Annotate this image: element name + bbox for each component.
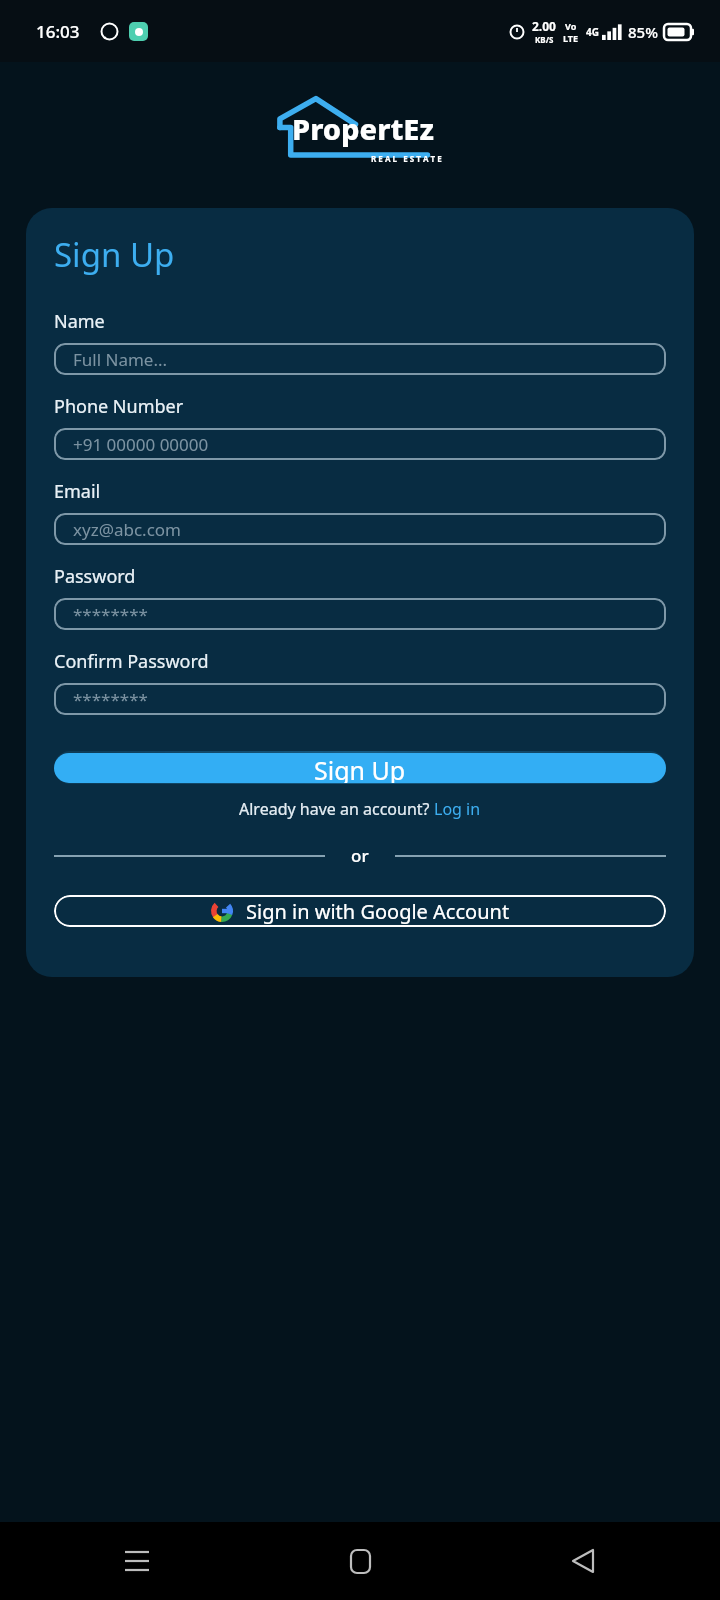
button[interactable]: Log in <box>434 798 481 820</box>
staticText: 16:03 <box>36 20 80 43</box>
staticText: Email <box>54 479 101 504</box>
staticText: Vo <box>565 20 577 32</box>
staticText: Phone Number <box>54 394 184 419</box>
staticText: Full Name... <box>73 348 168 371</box>
button[interactable]: Recent apps <box>110 1534 164 1588</box>
staticText: Sign Up <box>54 232 175 277</box>
staticText: Already have an account? <box>239 798 434 820</box>
staticText: Sign Up <box>314 753 406 783</box>
button[interactable]: Back <box>556 1534 610 1588</box>
staticText: Log in <box>434 798 481 820</box>
staticText: ******** <box>73 603 148 626</box>
staticText: ******** <box>73 688 148 711</box>
button[interactable]: +91 00000 00000 <box>54 428 666 460</box>
staticText: PropertEz <box>292 109 434 148</box>
button[interactable]: Sign Up <box>54 753 666 783</box>
staticText: KB/S <box>535 34 554 45</box>
staticText: 85% <box>628 22 658 42</box>
staticText: R E A L E S T A T E <box>371 153 442 164</box>
button[interactable]: xyz@abc.com <box>54 513 666 545</box>
staticText: LTE <box>563 32 579 44</box>
staticText: 2.00 <box>532 18 556 34</box>
button[interactable]: ******** <box>54 683 666 715</box>
staticText: Name <box>54 309 105 334</box>
staticText: Sign in with Google Account <box>246 898 510 925</box>
staticText: or <box>351 844 369 867</box>
button[interactable]: ******** <box>54 598 666 630</box>
staticText: Confirm Password <box>54 649 209 674</box>
button[interactable]: Home <box>333 1534 387 1588</box>
staticText: xyz@abc.com <box>73 518 181 541</box>
button[interactable]: Sign in with Google Account <box>54 895 666 927</box>
staticText: 4G <box>586 25 599 39</box>
staticText: Password <box>54 564 136 589</box>
button[interactable]: Full Name... <box>54 343 666 375</box>
staticText: +91 00000 00000 <box>73 433 209 456</box>
